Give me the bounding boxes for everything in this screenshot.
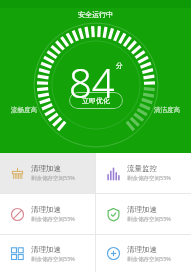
staticText: 清理加速 <box>127 245 157 254</box>
staticText: 流量监控 <box>127 164 157 173</box>
staticText: 分 <box>116 61 123 70</box>
button[interactable]: 清理加速 <box>96 194 191 234</box>
staticText: 清理加速 <box>127 205 157 214</box>
button[interactable]: 清理加速 <box>96 235 191 272</box>
staticText: 流畅度高 <box>11 106 37 114</box>
staticText: 剩余储存空间55% <box>31 174 75 182</box>
staticText: 安全运行中 <box>78 10 113 19</box>
staticText: 剩余储存空间55% <box>127 215 171 223</box>
staticText: 剩余储存空间55% <box>127 255 171 263</box>
button[interactable]: 流量监控 <box>96 153 191 193</box>
staticText: 剩余储存空间55% <box>31 255 75 263</box>
button[interactable]: 清理加速 <box>0 235 95 272</box>
staticText: 清洁度高 <box>154 106 180 114</box>
staticText: 剩余储存空间55% <box>31 215 75 223</box>
staticText: 立即优化 <box>82 96 110 105</box>
staticText: 清理加速 <box>31 205 61 214</box>
staticText: 清理加速 <box>31 245 61 254</box>
staticText: 84 <box>69 55 115 109</box>
button[interactable]: 立即优化 <box>69 92 123 109</box>
button[interactable]: 清理加速 <box>0 194 95 234</box>
button[interactable]: 清理加速 <box>0 153 95 193</box>
staticText: 清理加速 <box>31 164 61 173</box>
staticText: 剩余储存空间55% <box>127 174 171 182</box>
